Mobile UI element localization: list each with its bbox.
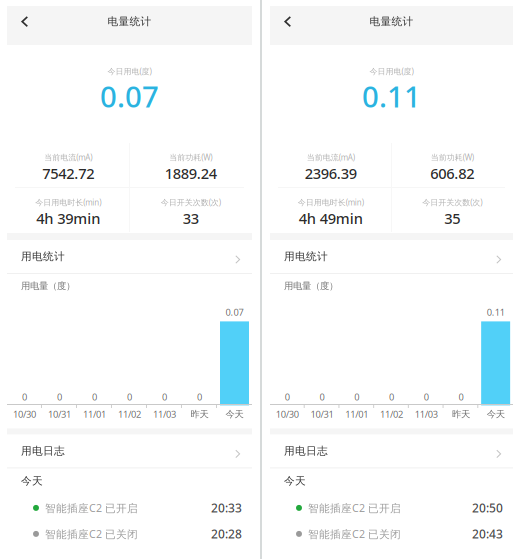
staticText: 用电统计 bbox=[284, 250, 328, 263]
staticText: 11/01 bbox=[83, 408, 106, 420]
staticText: 用电统计 bbox=[21, 250, 65, 263]
staticText: 今天 bbox=[284, 474, 306, 487]
staticText: 智能插座C2 已关闭 bbox=[45, 527, 138, 541]
staticText: 4h 49min bbox=[299, 209, 363, 228]
button[interactable]: Back bbox=[17, 12, 32, 31]
staticText: 当前电流(mA) bbox=[307, 152, 355, 163]
staticText: 当前功耗(W) bbox=[431, 152, 474, 163]
staticText: 0.11 bbox=[487, 306, 505, 318]
staticText: 昨天 bbox=[452, 408, 470, 420]
staticText: 11/01 bbox=[345, 408, 368, 420]
staticText: 今日用电时长(min) bbox=[35, 197, 101, 208]
staticText: 20:28 bbox=[211, 526, 242, 542]
staticText: 7542.72 bbox=[42, 164, 94, 183]
staticText: 0 bbox=[354, 391, 359, 403]
staticText: 用电日志 bbox=[21, 444, 65, 457]
staticText: 0.07 bbox=[225, 306, 243, 318]
staticText: 2396.39 bbox=[305, 164, 357, 183]
staticText: 0 bbox=[162, 391, 167, 403]
staticText: 35 bbox=[444, 209, 460, 228]
staticText: 用电日志 bbox=[284, 444, 328, 457]
staticText: 今天 bbox=[225, 408, 243, 420]
staticText: 20:43 bbox=[472, 526, 503, 542]
staticText: 0 bbox=[285, 391, 290, 403]
staticText: 10/30 bbox=[276, 408, 299, 420]
staticText: 今天 bbox=[21, 474, 43, 487]
staticText: 当前功耗(W) bbox=[169, 152, 212, 163]
button[interactable]: Back bbox=[280, 12, 295, 31]
staticText: 用电量（度） bbox=[21, 280, 75, 292]
button[interactable]: 用电日志 bbox=[7, 434, 252, 467]
staticText: 智能插座C2 已开启 bbox=[308, 501, 401, 515]
staticText: 11/03 bbox=[415, 408, 438, 420]
staticText: 今日用电时长(min) bbox=[298, 197, 364, 208]
staticText: 用电量（度） bbox=[284, 280, 338, 292]
staticText: 智能插座C2 已关闭 bbox=[308, 527, 401, 541]
staticText: 0 bbox=[57, 391, 62, 403]
staticText: 0 bbox=[22, 391, 27, 403]
staticText: 智能插座C2 已开启 bbox=[45, 501, 138, 515]
staticText: 昨天 bbox=[190, 408, 208, 420]
staticText: 0 bbox=[458, 391, 463, 403]
staticText: 11/02 bbox=[380, 408, 403, 420]
staticText: 33 bbox=[183, 209, 199, 228]
button[interactable]: 用电日志 bbox=[270, 434, 513, 467]
staticText: 电量统计 bbox=[107, 15, 151, 28]
staticText: 0 bbox=[320, 391, 325, 403]
staticText: 今日用电(度) bbox=[369, 66, 413, 77]
staticText: 0 bbox=[197, 391, 202, 403]
staticText: 0 bbox=[389, 391, 394, 403]
staticText: 今日用电(度) bbox=[107, 66, 151, 77]
button[interactable]: 用电统计 bbox=[270, 240, 513, 273]
staticText: 今日开关次数(次) bbox=[161, 197, 221, 208]
button[interactable]: 用电统计 bbox=[7, 240, 252, 273]
staticText: 0 bbox=[92, 391, 97, 403]
staticText: 当前电流(mA) bbox=[44, 152, 92, 163]
staticText: 20:50 bbox=[472, 500, 503, 516]
staticText: 11/02 bbox=[118, 408, 141, 420]
staticText: 今日开关次数(次) bbox=[422, 197, 482, 208]
staticText: 10/31 bbox=[311, 408, 334, 420]
staticText: 10/30 bbox=[13, 408, 36, 420]
staticText: 10/31 bbox=[48, 408, 71, 420]
staticText: 20:33 bbox=[211, 500, 242, 516]
staticText: 电量统计 bbox=[369, 15, 413, 28]
staticText: 11/03 bbox=[153, 408, 176, 420]
staticText: 0 bbox=[424, 391, 429, 403]
staticText: 0.11 bbox=[362, 77, 421, 116]
staticText: 4h 39min bbox=[36, 209, 100, 228]
staticText: 0.07 bbox=[100, 77, 159, 116]
staticText: 606.82 bbox=[430, 164, 474, 183]
staticText: 今天 bbox=[487, 408, 505, 420]
staticText: 0 bbox=[127, 391, 132, 403]
staticText: 1889.24 bbox=[165, 164, 217, 183]
